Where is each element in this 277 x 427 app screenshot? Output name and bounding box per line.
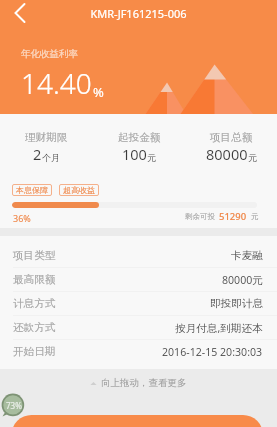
button[interactable]: 开始日期 — [0, 340, 277, 363]
staticText: 14.40 — [21, 64, 92, 102]
staticText: 剩余可投 — [185, 212, 215, 221]
button[interactable]: 超高收益 — [59, 184, 99, 196]
staticText: 80000 — [206, 144, 248, 164]
staticText: 卡麦融 — [231, 249, 263, 262]
staticText: 计息方式 — [13, 297, 56, 310]
staticText: 向上拖动，查看更多 — [101, 377, 187, 389]
staticText: 最高限额 — [13, 273, 56, 286]
button[interactable]: 最高限额 — [0, 268, 277, 291]
staticText: 年化收益利率 — [21, 48, 78, 60]
staticText: 个月 — [42, 152, 60, 163]
button[interactable]: 73% — [2, 394, 25, 417]
staticText: KMR-JF161215-006 — [0, 6, 277, 21]
button[interactable]: Back — [7, 0, 33, 26]
staticText: 元 — [248, 152, 257, 163]
button[interactable]: 还款方式 — [0, 316, 277, 339]
staticText: 2 — [33, 144, 42, 164]
button[interactable]: 项目类型 — [0, 244, 277, 267]
staticText: 按月付息,到期还本 — [175, 321, 263, 335]
button[interactable]: 计息方式 — [0, 292, 277, 315]
staticText: 元 — [251, 212, 259, 221]
staticText: 理财期限 — [25, 131, 68, 144]
staticText: 73% — [6, 400, 22, 411]
staticText: 36% — [13, 212, 31, 224]
staticText: 超高收益 — [63, 185, 95, 195]
staticText: 2016-12-15 20:30:03 — [162, 345, 263, 359]
staticText: 51290 — [219, 210, 247, 223]
staticText: 还款方式 — [13, 321, 56, 334]
staticText: 项目总额 — [210, 131, 253, 144]
button[interactable]: 本息保障 — [12, 184, 52, 196]
staticText: 开始日期 — [13, 345, 56, 358]
staticText: 100 — [122, 144, 147, 164]
staticText: 本息保障 — [16, 185, 48, 195]
staticText: 项目类型 — [13, 249, 56, 262]
staticText: % — [93, 83, 104, 101]
staticText: 80000元 — [222, 273, 263, 287]
staticText: 起投金额 — [118, 131, 161, 144]
staticText: 即投即计息 — [210, 297, 263, 310]
staticText: 元 — [147, 152, 156, 163]
button[interactable]: 立即投资 — [12, 415, 264, 427]
